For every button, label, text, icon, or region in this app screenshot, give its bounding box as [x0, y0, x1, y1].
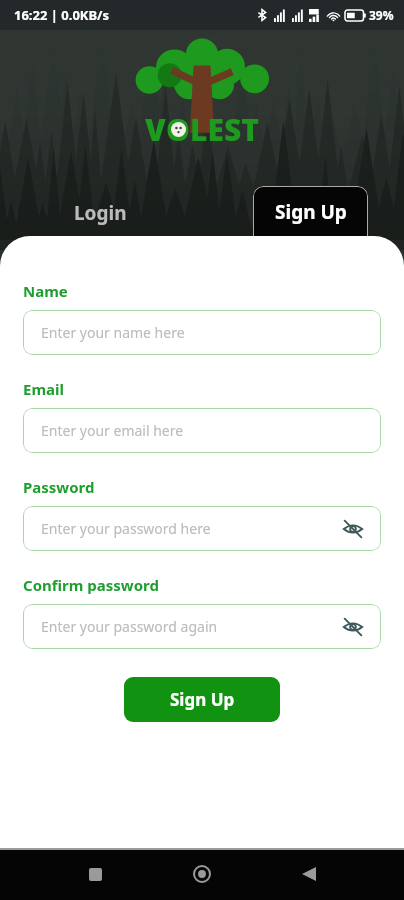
- staticText: Confirm password: [23, 575, 159, 595]
- button[interactable]: Login: [40, 188, 160, 238]
- staticText: Sign Up: [170, 688, 235, 711]
- staticText: Login: [74, 200, 127, 226]
- staticText: Enter your password here: [41, 519, 211, 538]
- staticText: Enter your email here: [41, 421, 184, 440]
- button[interactable]: Enter your name here: [23, 310, 381, 355]
- staticText: Name: [23, 281, 68, 301]
- button[interactable]: Back: [287, 852, 331, 896]
- staticText: 39%: [369, 7, 394, 23]
- staticText: Sign Up: [275, 199, 347, 225]
- staticText: Enter your name here: [41, 323, 185, 342]
- staticText: V: [145, 109, 166, 150]
- button[interactable]: Toggle password visibility: [339, 613, 367, 641]
- staticText: Enter your password again: [41, 617, 218, 636]
- staticText: Password: [23, 477, 95, 497]
- button[interactable]: Enter your password again: [23, 604, 381, 649]
- button[interactable]: Home: [180, 852, 224, 896]
- staticText: Email: [23, 379, 64, 399]
- staticText: O: [166, 109, 190, 150]
- button[interactable]: Recents: [73, 852, 117, 896]
- button[interactable]: Enter your email here: [23, 408, 381, 453]
- button[interactable]: Toggle password visibility: [339, 515, 367, 543]
- staticText: LEST: [190, 109, 259, 150]
- button[interactable]: Sign Up: [253, 186, 368, 238]
- staticText: 16:22 | 0.0KB/s: [14, 6, 110, 24]
- button[interactable]: Enter your password here: [23, 506, 381, 551]
- button[interactable]: Sign Up: [124, 677, 280, 722]
